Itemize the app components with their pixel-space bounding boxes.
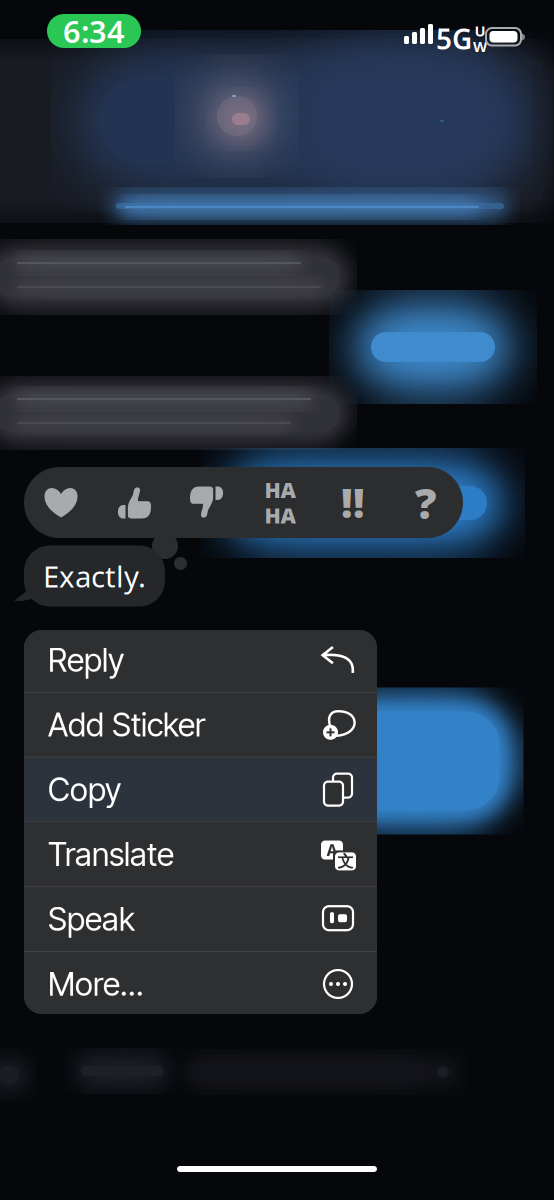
staticText: Translate <box>48 835 174 874</box>
staticText: !! <box>341 476 365 529</box>
button[interactable]: Love <box>24 467 97 538</box>
button[interactable]: Translate <box>24 822 377 886</box>
staticText: 5G <box>436 20 472 57</box>
staticText: Add Sticker <box>48 705 205 744</box>
button[interactable]: Add Sticker <box>24 693 377 757</box>
staticText: Speak <box>48 900 135 938</box>
staticText: U <box>474 21 485 41</box>
staticText: A <box>326 839 337 861</box>
staticText: More... <box>48 965 144 1003</box>
button[interactable]: Dislike <box>170 467 243 538</box>
staticText: 6:34 <box>63 11 125 51</box>
button[interactable]: Question <box>389 467 462 538</box>
staticText: W <box>473 37 487 56</box>
staticText: Copy <box>48 770 121 809</box>
button[interactable]: Haha <box>243 467 316 538</box>
button[interactable]: Copy <box>24 758 377 821</box>
button[interactable]: Like <box>97 467 170 538</box>
staticText: Reply <box>48 641 124 679</box>
staticText: HA <box>264 476 295 504</box>
button[interactable]: Emphasize <box>316 467 389 538</box>
staticText: ? <box>415 474 437 531</box>
staticText: 文 <box>337 852 353 871</box>
button[interactable]: More... <box>24 952 377 1016</box>
staticText: HA <box>264 501 295 529</box>
button[interactable]: Speak <box>24 887 377 951</box>
button[interactable]: Reply <box>24 628 377 692</box>
staticText: Exactly. <box>43 556 146 595</box>
